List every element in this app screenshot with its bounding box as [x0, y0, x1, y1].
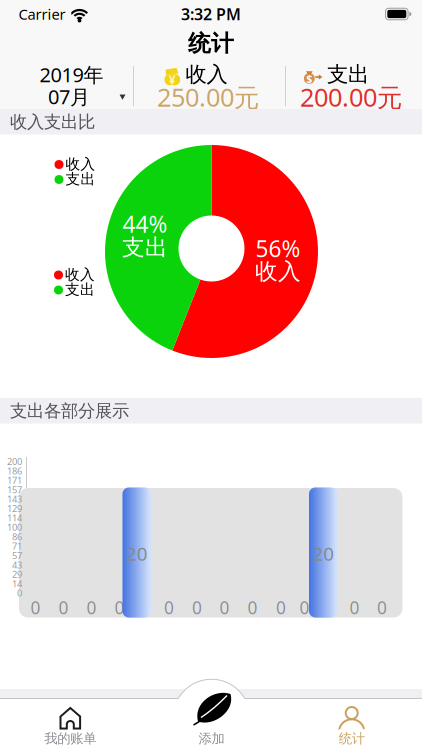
- staticText: 0: [377, 596, 387, 619]
- staticText: 143: [7, 493, 22, 505]
- staticText: 支出: [122, 234, 168, 261]
- staticText: 0: [219, 596, 229, 619]
- staticText: 收入: [185, 61, 227, 88]
- staticText: 收入各部分展示: [10, 696, 129, 718]
- staticText: 支出: [327, 61, 369, 88]
- staticText: 20: [312, 541, 334, 566]
- staticText: 支出: [65, 170, 95, 188]
- staticText: 100: [7, 521, 22, 533]
- staticText: 收入: [255, 258, 301, 285]
- staticText: 统计: [339, 730, 365, 747]
- staticText: 0: [192, 596, 202, 619]
- staticText: 收入支出比: [10, 111, 95, 133]
- staticText: 44%: [122, 209, 167, 239]
- staticText: 0: [58, 596, 68, 619]
- staticText: 0: [349, 596, 359, 619]
- staticText: 129: [7, 502, 22, 515]
- button[interactable]: 添加: [151, 677, 271, 747]
- staticText: 171: [7, 474, 22, 486]
- staticText: 200.00元: [300, 80, 402, 114]
- staticText: 0: [17, 587, 22, 599]
- staticText: 添加: [198, 730, 224, 747]
- staticText: 200: [7, 455, 22, 468]
- staticText: 0: [114, 596, 124, 619]
- staticText: 0: [164, 596, 174, 619]
- staticText: 14: [12, 577, 22, 590]
- staticText: 57: [12, 549, 22, 562]
- staticText: 0: [30, 596, 40, 619]
- staticText: 56%: [255, 233, 300, 263]
- staticText: 0: [299, 596, 309, 619]
- staticText: 71: [12, 540, 22, 552]
- button[interactable]: 2019年: [0, 62, 133, 109]
- staticText: 支出各部分展示: [10, 400, 129, 422]
- staticText: 0: [276, 596, 286, 619]
- staticText: 20: [126, 541, 148, 566]
- staticText: 3:32 PM: [181, 3, 241, 25]
- staticText: 支出: [65, 280, 95, 298]
- staticText: ¥: [169, 72, 176, 88]
- staticText: 43: [12, 559, 22, 571]
- staticText: $: [306, 71, 312, 86]
- button[interactable]: 我的账单: [0, 698, 140, 749]
- staticText: 114: [7, 512, 22, 524]
- staticText: 157: [7, 483, 22, 496]
- staticText: 0: [86, 596, 96, 619]
- staticText: 我的账单: [44, 730, 96, 747]
- staticText: 0: [247, 596, 257, 619]
- staticText: 2019年: [39, 61, 103, 88]
- staticText: 29: [12, 568, 22, 580]
- staticText: 收入: [65, 265, 95, 283]
- button[interactable]: 统计: [282, 698, 422, 749]
- staticText: Carrier: [18, 4, 65, 24]
- staticText: 07月: [48, 83, 90, 110]
- staticText: 86: [12, 530, 22, 543]
- staticText: 186: [7, 465, 22, 477]
- staticText: 250.00元: [157, 80, 259, 114]
- staticText: 收入: [65, 155, 95, 173]
- staticText: 统计: [188, 30, 234, 57]
